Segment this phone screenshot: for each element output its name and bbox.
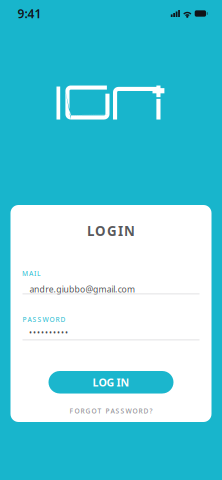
- staticText: 9:41: [17, 5, 41, 21]
- staticText: • • • • • • • • • •: [29, 327, 68, 338]
- staticText: M A I L: [22, 269, 41, 278]
- staticText: P A S S W O R D: [22, 315, 65, 324]
- staticText: L O G I N: [87, 222, 135, 240]
- staticText: andre.giubbo@gmail.com: [29, 283, 144, 296]
- staticText: F O R G O T P A S S W O R D ?: [69, 407, 152, 415]
- staticText: LOG IN: [92, 375, 129, 389]
- button[interactable]: LOG IN: [48, 371, 173, 393]
- button[interactable]: F O R G O T P A S S W O R D ?: [10, 404, 211, 418]
